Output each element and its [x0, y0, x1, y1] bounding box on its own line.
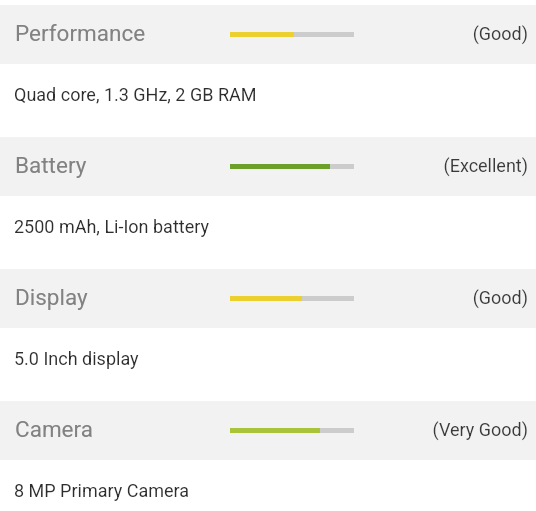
- staticText: 8 MP Primary Camera: [14, 480, 190, 501]
- other: Rating bar: [230, 296, 354, 301]
- staticText: 2500 mAh, Li-Ion battery: [14, 216, 209, 237]
- other: Rating bar: [230, 428, 354, 433]
- staticText: Battery: [15, 152, 87, 178]
- staticText: Performance: [15, 20, 146, 46]
- staticText: Display: [15, 284, 88, 310]
- staticText: (Excellent): [0, 155, 528, 176]
- staticText: 5.0 Inch display: [14, 348, 139, 369]
- button[interactable]: [0, 137, 536, 196]
- staticText: (Good): [0, 23, 528, 44]
- button[interactable]: [0, 5, 536, 64]
- staticText: (Very Good): [0, 419, 528, 440]
- button[interactable]: [0, 401, 536, 460]
- staticText: (Good): [0, 287, 528, 308]
- staticText: Camera: [15, 416, 93, 442]
- other: Rating bar: [230, 164, 354, 169]
- staticText: Quad core, 1.3 GHz, 2 GB RAM: [14, 84, 257, 105]
- button[interactable]: [0, 269, 536, 328]
- other: Rating bar: [230, 32, 354, 37]
